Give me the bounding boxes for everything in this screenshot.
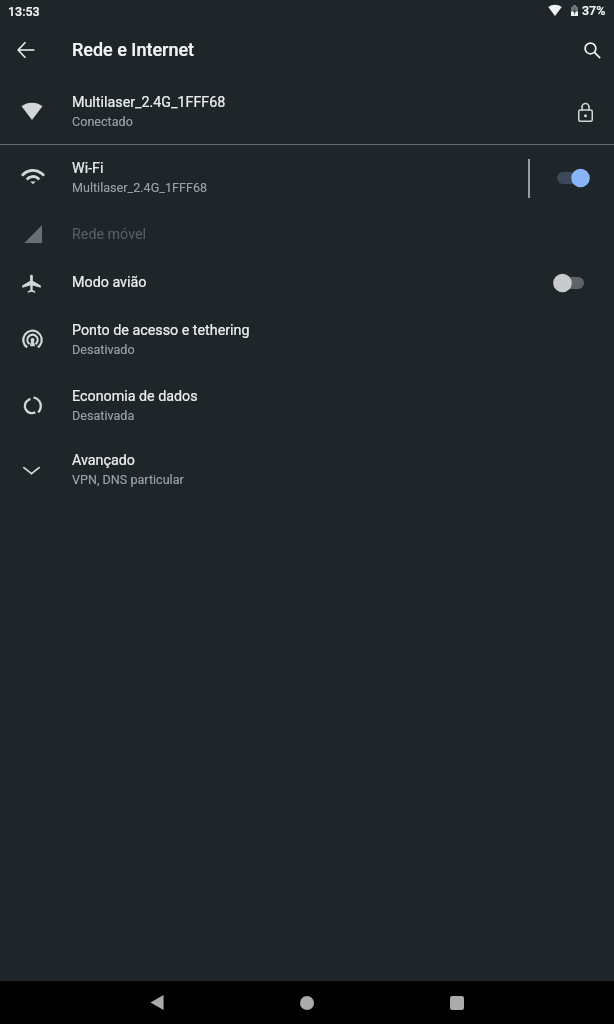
button[interactable]: Home — [283, 981, 331, 1024]
button[interactable]: Ponto de acesso e tethering — [0, 307, 614, 373]
staticText: 13:53 — [8, 4, 40, 19]
button[interactable]: Recent apps — [433, 981, 481, 1024]
staticText: Rede móvel — [72, 226, 147, 243]
button[interactable]: Economia de dados — [0, 373, 614, 439]
button[interactable]: Multilaser_2.4G_1FFF68 — [0, 79, 614, 144]
button[interactable]: Secure network — [567, 94, 603, 130]
staticText: Avançado — [72, 452, 135, 469]
button[interactable]: Wi-Fi — [0, 145, 614, 211]
button[interactable]: Back — [6, 30, 46, 70]
staticText: Conectado — [72, 114, 133, 129]
button[interactable]: Rede móvel — [0, 211, 614, 259]
button[interactable]: Wi-Fi switch — [544, 156, 600, 200]
button[interactable]: Modo avião switch — [544, 261, 600, 305]
staticText: Desativada — [72, 408, 135, 423]
staticText: Wi-Fi — [72, 160, 104, 177]
staticText: Rede e Internet — [72, 39, 195, 60]
staticText: Multilaser_2.4G_1FFF68 — [72, 180, 208, 195]
staticText: Modo avião — [72, 274, 147, 291]
button[interactable]: Modo avião — [0, 259, 614, 307]
staticText: 37% — [582, 3, 606, 18]
button[interactable]: Back — [133, 981, 181, 1024]
staticText: Desativado — [72, 342, 135, 357]
staticText: Multilaser_2.4G_1FFF68 — [72, 94, 226, 111]
staticText: Economia de dados — [72, 388, 198, 405]
button[interactable]: Avançado — [0, 439, 614, 502]
staticText: Ponto de acesso e tethering — [72, 322, 250, 339]
staticText: VPN, DNS particular — [72, 472, 184, 487]
button[interactable]: Search — [572, 30, 612, 70]
